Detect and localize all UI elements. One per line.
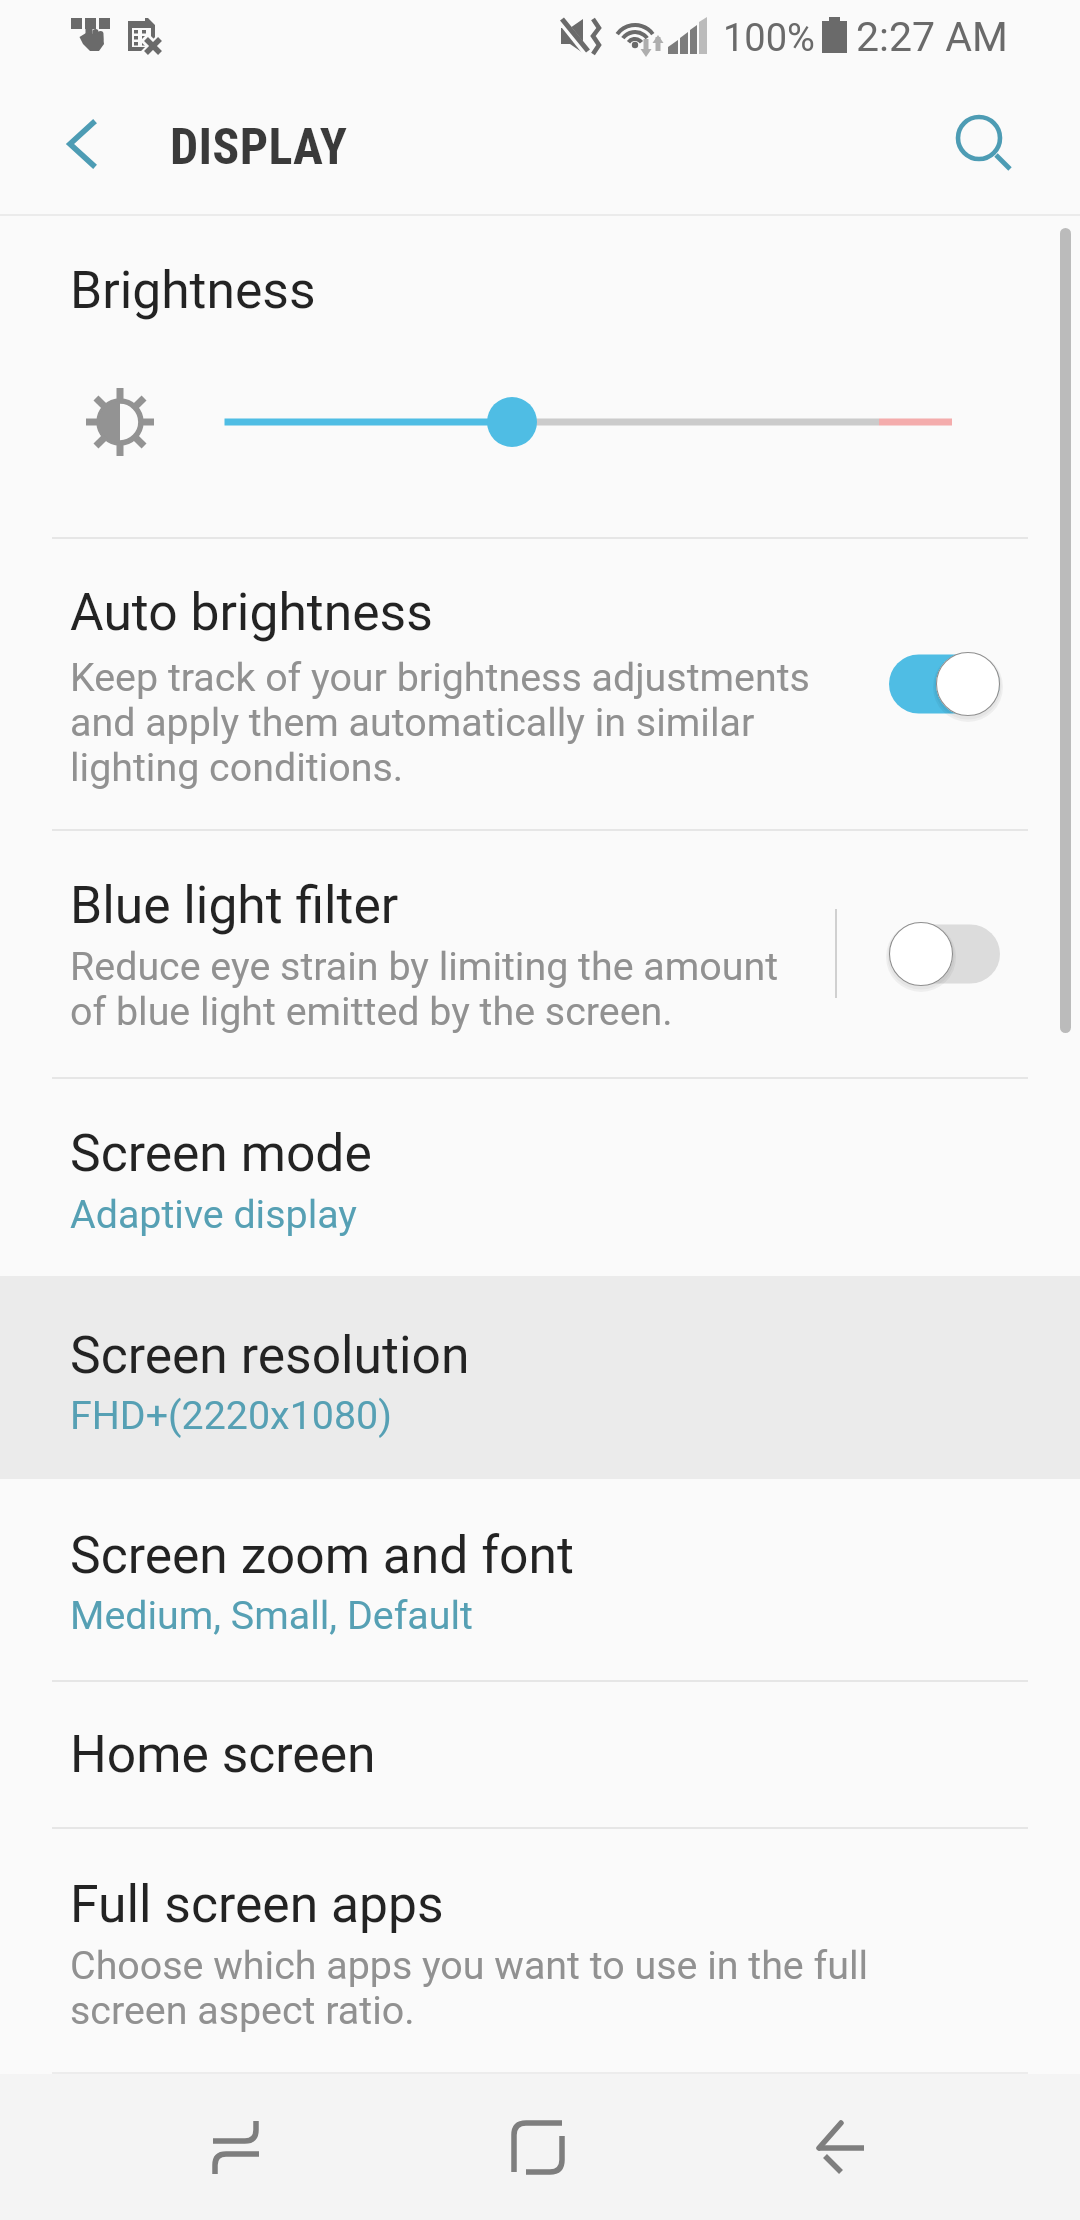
- staticText: 2:27 AM: [856, 13, 1008, 61]
- staticText: FHD+(2220x1080): [70, 1392, 392, 1438]
- button[interactable]: Screen resolution: [0, 1276, 1080, 1479]
- staticText: Blue light filter: [70, 875, 399, 935]
- staticText: Screen mode: [70, 1123, 372, 1183]
- staticText: DISPLAY: [170, 118, 348, 177]
- button[interactable]: Screen zoom and font: [0, 1479, 1080, 1680]
- staticText: Full screen apps: [70, 1874, 444, 1934]
- button[interactable]: Switch off: [869, 904, 1021, 1004]
- staticText: Brightness: [70, 260, 316, 320]
- button[interactable]: Home: [420, 2074, 660, 2220]
- button[interactable]: Navigate up: [14, 90, 124, 214]
- button[interactable]: Recent apps: [115, 2074, 355, 2220]
- button[interactable]: Full screen apps: [0, 1828, 1080, 2074]
- button[interactable]: Switch on: [869, 634, 1021, 734]
- staticText: Medium, Small, Default: [70, 1592, 473, 1638]
- staticText: Auto brightness: [70, 582, 433, 642]
- staticText: Adaptive display: [70, 1191, 358, 1237]
- button[interactable]: Screen mode: [0, 1078, 1080, 1276]
- button[interactable]: Search: [918, 90, 1042, 214]
- button[interactable]: Blue light filter: [0, 830, 1080, 1076]
- staticText: Screen zoom and font: [70, 1525, 574, 1585]
- button[interactable]: Auto brightness: [0, 538, 1080, 829]
- staticText: Reduce eye strain by limiting the amount…: [70, 943, 779, 1034]
- button[interactable]: Home screen: [0, 1681, 1080, 1827]
- staticText: Screen resolution: [70, 1325, 470, 1385]
- staticText: 100%: [723, 16, 815, 61]
- staticText: Keep track of your brightness adjustment…: [70, 654, 810, 790]
- button[interactable]: Back: [760, 2074, 1000, 2220]
- staticText: Home screen: [70, 1724, 376, 1784]
- staticText: Choose which apps you want to use in the…: [70, 1942, 869, 2033]
